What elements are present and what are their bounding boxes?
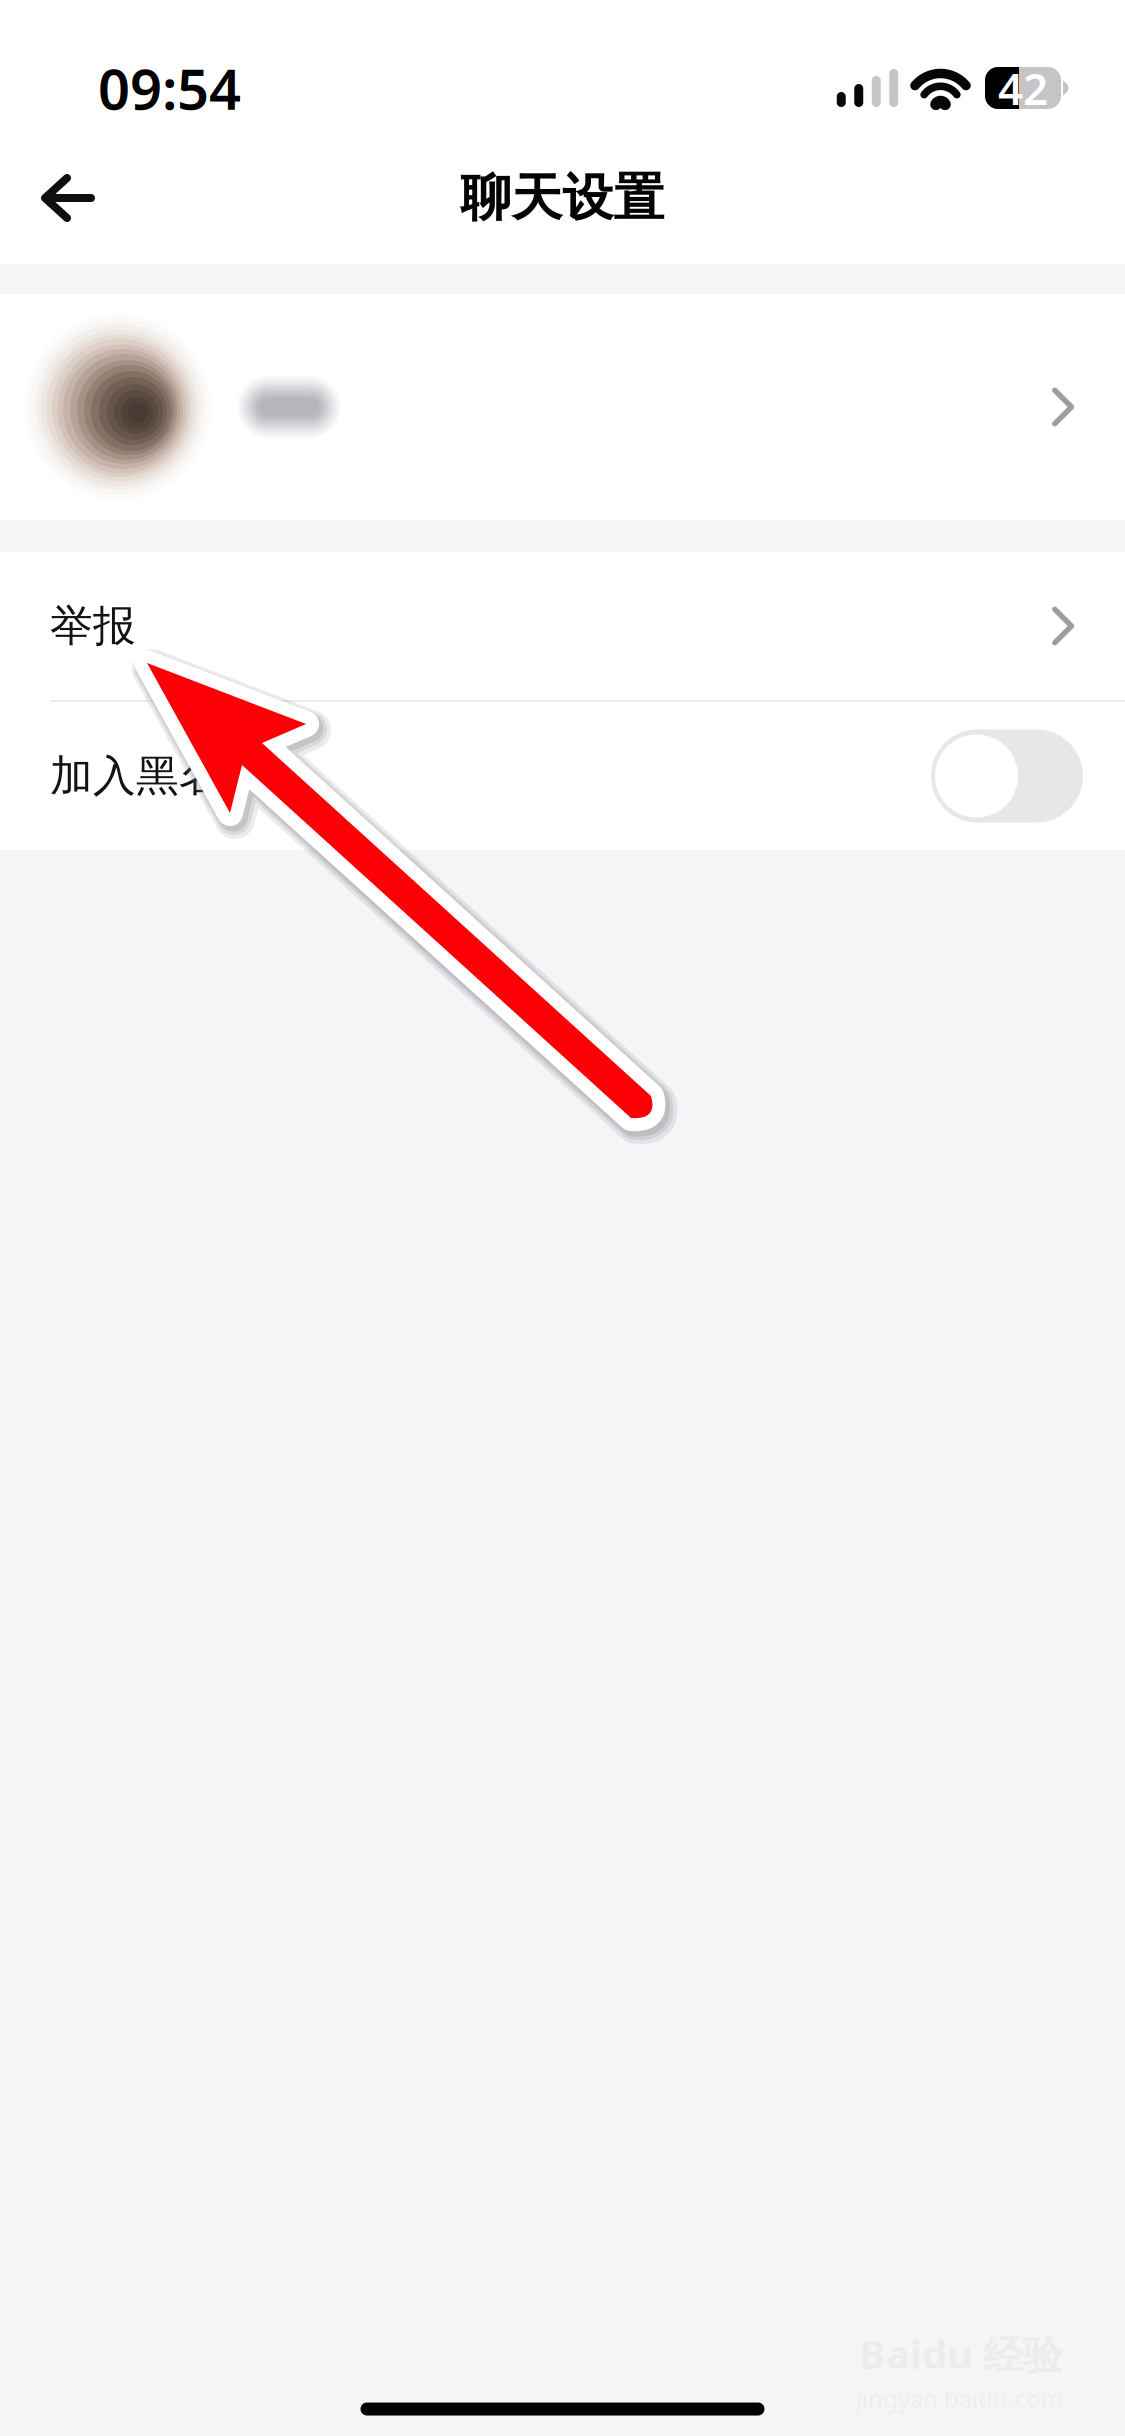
button[interactable]: 举报 bbox=[0, 552, 1125, 700]
staticText: 举报 bbox=[50, 600, 136, 652]
staticText: 09:54 bbox=[98, 51, 241, 125]
button[interactable] bbox=[0, 294, 1125, 520]
staticText: Baidu 经验 bbox=[859, 2327, 1063, 2380]
staticText: 加入黑名单 bbox=[50, 750, 265, 802]
button[interactable]: Back bbox=[0, 132, 124, 264]
staticText: 聊天设置 bbox=[460, 167, 664, 229]
button[interactable]: 加入黑名单 bbox=[0, 702, 1125, 850]
staticText: 42 bbox=[998, 59, 1048, 117]
